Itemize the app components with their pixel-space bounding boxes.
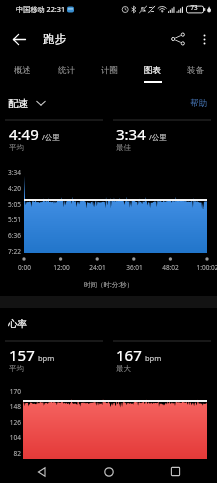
staticText: 0:00: [18, 263, 31, 272]
button[interactable]: 概述: [0, 58, 44, 84]
staticText: 帮助: [190, 98, 207, 109]
staticText: 4:49: [9, 124, 39, 144]
staticText: 126: [9, 418, 21, 427]
staticText: /公里: [149, 132, 167, 142]
button[interactable]: 装备: [174, 58, 217, 84]
staticText: 148: [9, 402, 21, 411]
staticText: 3:34: [116, 124, 146, 144]
staticText: 1:00:02: [196, 263, 217, 272]
button[interactable]: Back: [17, 460, 67, 483]
staticText: 24:01: [89, 263, 106, 272]
button[interactable]: 图表: [131, 58, 174, 84]
staticText: 装备: [187, 65, 204, 76]
staticText: 73: [190, 3, 198, 11]
staticText: 104: [9, 433, 21, 442]
button[interactable]: More options: [191, 18, 217, 60]
staticText: 配速: [8, 97, 28, 110]
staticText: 36:01: [126, 263, 143, 272]
button[interactable]: 配速: [8, 94, 46, 112]
staticText: 82: [13, 449, 21, 458]
staticText: 5:05: [8, 200, 21, 209]
button[interactable]: Back: [2, 18, 36, 60]
staticText: 计圈: [101, 65, 118, 76]
staticText: 图表: [144, 65, 161, 76]
staticText: 平均: [9, 143, 24, 152]
staticText: 167: [116, 345, 142, 365]
staticText: 7:22: [8, 247, 21, 256]
staticText: 4:20: [8, 184, 21, 193]
button[interactable]: Recents: [150, 460, 200, 483]
staticText: 统计: [58, 65, 75, 76]
staticText: bpm: [38, 353, 55, 363]
staticText: 48:02: [162, 263, 179, 272]
staticText: 6:36: [8, 231, 21, 240]
staticText: 中国移动 22:31: [16, 4, 65, 14]
staticText: bpm: [145, 353, 162, 363]
staticText: 跑步: [43, 32, 66, 46]
button[interactable]: Share: [163, 18, 193, 60]
staticText: 3:34: [8, 168, 21, 177]
button[interactable]: 统计: [44, 58, 88, 84]
button[interactable]: Home: [84, 460, 134, 483]
staticText: 5:51: [8, 215, 21, 224]
button[interactable]: 计圈: [88, 58, 131, 84]
staticText: 概述: [14, 65, 31, 76]
staticText: 时间（时:分:秒）: [84, 280, 133, 289]
staticText: /公里: [42, 132, 60, 142]
staticText: 最佳: [116, 143, 131, 152]
staticText: 最大: [116, 364, 131, 373]
staticText: 12:00: [53, 263, 70, 272]
staticText: 平均: [9, 364, 24, 373]
staticText: 157: [9, 345, 35, 365]
staticText: 170: [9, 387, 21, 396]
staticText: 心率: [8, 318, 27, 330]
button[interactable]: 帮助: [190, 94, 207, 112]
